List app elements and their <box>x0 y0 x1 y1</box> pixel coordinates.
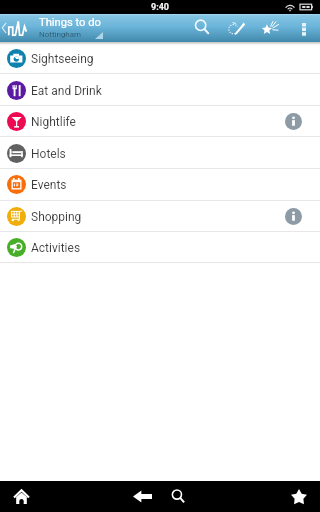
button[interactable]: Back <box>0 14 36 42</box>
button[interactable]: Eat and Drink <box>0 74 320 106</box>
staticText: Hotels <box>31 147 66 161</box>
button[interactable]: Back <box>126 481 158 512</box>
staticText: Things to do <box>39 16 101 29</box>
staticText: Nightlife <box>31 115 76 129</box>
button[interactable]: Favourites <box>283 481 315 512</box>
staticText: Eat and Drink <box>31 84 102 98</box>
button[interactable]: Edit <box>222 14 250 42</box>
button[interactable]: Home <box>5 481 37 512</box>
staticText: Events <box>31 178 67 192</box>
staticText: Sightseeing <box>31 52 94 66</box>
button[interactable]: Hotels <box>0 137 320 169</box>
staticText: Activities <box>31 241 81 255</box>
staticText: Shopping <box>31 210 82 224</box>
button[interactable]: More information <box>285 113 302 130</box>
button[interactable]: Sightseeing <box>0 42 320 74</box>
button[interactable]: Search <box>163 481 195 512</box>
button[interactable]: More information <box>285 208 302 225</box>
button[interactable]: Shopping <box>0 200 320 232</box>
button[interactable]: Activities <box>0 231 320 263</box>
button[interactable]: Events <box>0 168 320 200</box>
button[interactable]: Favourites <box>256 14 284 42</box>
staticText: 9:40 <box>151 2 170 13</box>
button[interactable]: Search <box>189 14 217 42</box>
staticText: Nottingham <box>39 30 82 39</box>
button[interactable]: Nightlife <box>0 105 320 137</box>
button[interactable]: More options <box>289 14 319 42</box>
